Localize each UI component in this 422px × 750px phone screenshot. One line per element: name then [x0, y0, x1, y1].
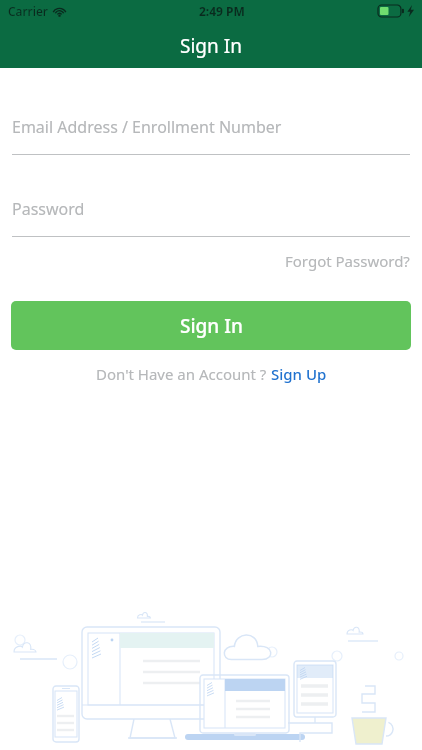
button[interactable]: Password: [12, 198, 410, 237]
staticText: Don't Have an Account ?: [96, 364, 271, 384]
button[interactable]: Sign In: [11, 301, 411, 350]
staticText: Carrier: [8, 3, 48, 19]
button[interactable]: Sign Up: [271, 364, 327, 384]
button[interactable]: Email Address / Enrollment Number: [12, 116, 410, 155]
staticText: Sign In: [180, 33, 242, 59]
staticText: Email Address / Enrollment Number: [12, 116, 282, 138]
staticText: 2:49 PM: [199, 3, 245, 19]
button[interactable]: Forgot Password?: [285, 249, 410, 273]
staticText: Sign In: [180, 313, 243, 339]
staticText: Password: [12, 198, 85, 220]
